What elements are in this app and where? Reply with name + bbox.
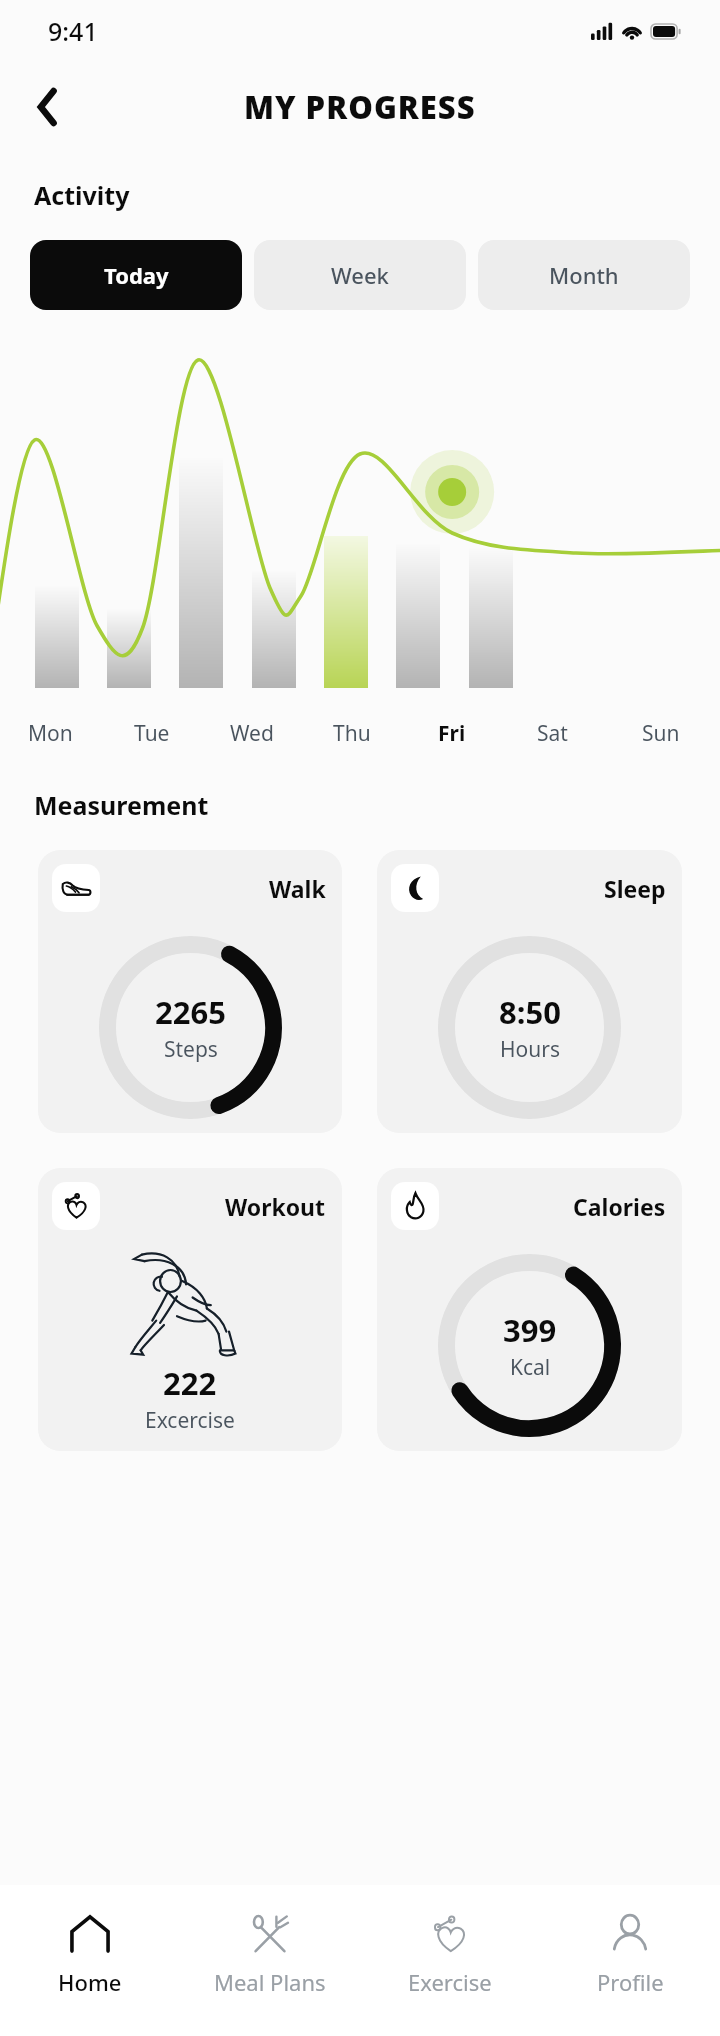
button[interactable]: Week (254, 240, 466, 310)
staticText: Steps (164, 1035, 218, 1064)
button[interactable]: Sleep (377, 850, 682, 1133)
staticText: 222 (163, 1362, 217, 1404)
staticText: Measurement (34, 788, 209, 822)
staticText: Excercise (145, 1406, 235, 1435)
staticText: Tue (134, 719, 170, 748)
staticText: Week (331, 260, 389, 290)
staticText: MY PROGRESS (244, 86, 476, 128)
staticText: Sat (537, 719, 568, 748)
staticText: 9:41 (48, 14, 98, 48)
staticText: Calories (573, 1191, 666, 1222)
staticText: Home (58, 1967, 122, 1997)
staticText: Exercise (408, 1967, 492, 1997)
staticText: 399 (503, 1309, 557, 1351)
staticText: Thu (333, 719, 371, 748)
staticText: Kcal (510, 1353, 551, 1382)
staticText: Month (549, 260, 619, 290)
button[interactable]: Exercise (360, 1905, 540, 2003)
staticText: Today (104, 260, 169, 290)
staticText: Activity (34, 178, 130, 212)
staticText: Fri (438, 719, 466, 748)
button[interactable]: Profile (540, 1905, 720, 2003)
button[interactable]: Month (478, 240, 690, 310)
staticText: Profile (597, 1967, 664, 1997)
button[interactable]: Workout (38, 1168, 342, 1451)
button[interactable]: Meal Plans (180, 1905, 360, 2003)
button[interactable]: Calories (377, 1168, 682, 1451)
staticText: Wed (230, 719, 274, 748)
staticText: Hours (500, 1035, 560, 1064)
button[interactable]: Back (22, 81, 74, 133)
staticText: Mon (28, 719, 73, 748)
button[interactable]: Today (30, 240, 242, 310)
button[interactable]: Home (0, 1905, 180, 2003)
staticText: Sleep (604, 873, 666, 904)
staticText: Meal Plans (214, 1967, 326, 1997)
staticText: Sun (642, 719, 680, 748)
staticText: 8:50 (499, 991, 561, 1033)
staticText: Walk (269, 873, 326, 904)
staticText: Workout (225, 1191, 326, 1222)
staticText: 2265 (155, 991, 226, 1033)
button[interactable]: Walk (38, 850, 342, 1133)
